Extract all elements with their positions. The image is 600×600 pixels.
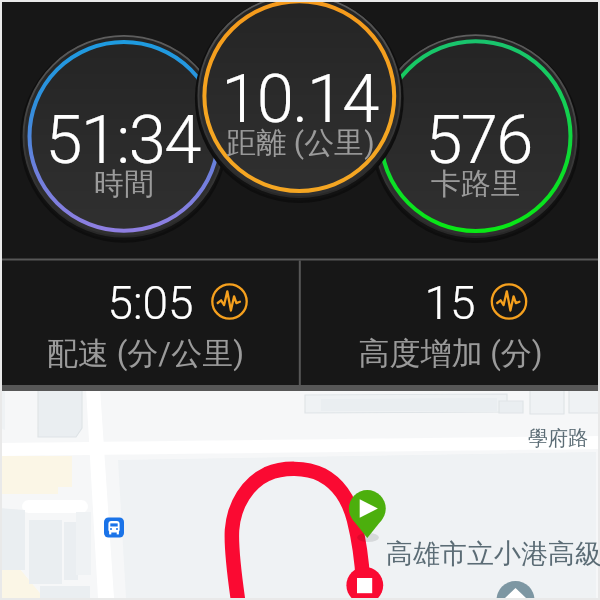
staticText: 距離 (公里) <box>226 124 375 162</box>
staticText: 學府路 <box>528 426 588 451</box>
button[interactable]: 10.14 <box>149 60 449 139</box>
button[interactable]: 576 <box>328 101 600 180</box>
button[interactable]: 51:34 <box>0 101 272 180</box>
staticText: 高雄市立小港高級中 <box>386 537 600 571</box>
button[interactable]: 15 <box>300 276 600 330</box>
staticText: 51:34 <box>45 101 200 180</box>
staticText: 5:05 <box>107 276 194 330</box>
staticText: 卡路里 <box>431 165 521 203</box>
staticText: 15 <box>424 276 476 330</box>
staticText: 576 <box>425 101 532 180</box>
button[interactable]: 5:05 <box>0 276 300 330</box>
staticText: 時間 <box>94 165 154 203</box>
staticText: 配速 (分/公里) <box>47 334 244 373</box>
staticText: 高度增加 (分) <box>358 334 543 373</box>
staticText: 10.14 <box>221 60 378 139</box>
